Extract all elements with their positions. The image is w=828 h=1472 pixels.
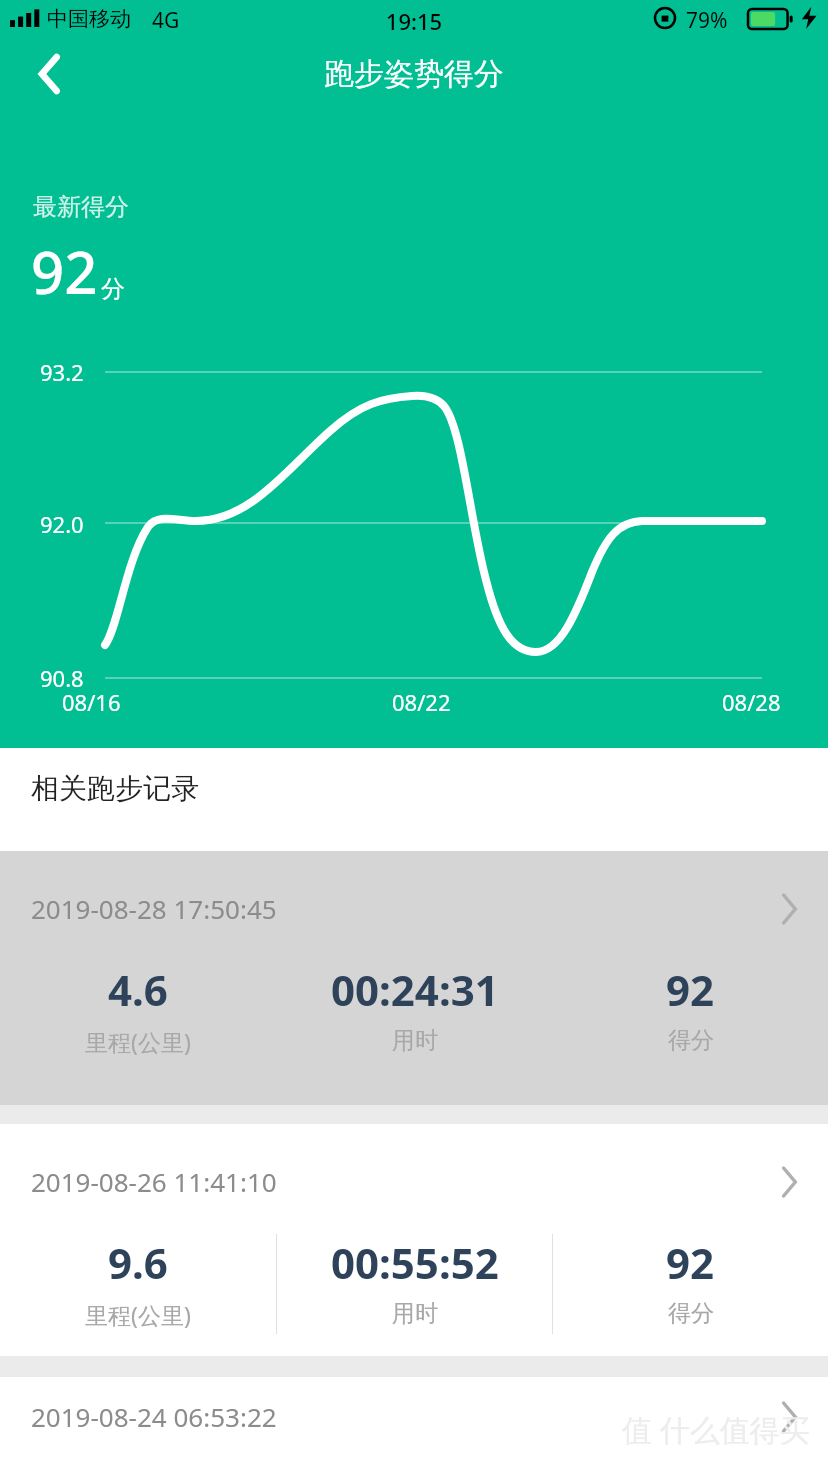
button[interactable]: 2019-08-28 17:50:45 bbox=[0, 851, 828, 1105]
staticText: 08/16 bbox=[62, 687, 121, 717]
staticText: 分 bbox=[101, 274, 125, 304]
button[interactable]: 2019-08-24 06:53:22 bbox=[0, 1377, 828, 1472]
staticText: 00:24:31 bbox=[331, 961, 499, 1018]
staticText: 2019-08-24 06:53:22 bbox=[31, 1399, 277, 1434]
button[interactable]: Back bbox=[14, 44, 86, 104]
staticText: 得分 bbox=[668, 1026, 714, 1055]
staticText: 9.6 bbox=[108, 1234, 168, 1291]
staticText: 92 bbox=[31, 232, 98, 311]
staticText: 中国移动 bbox=[47, 6, 131, 32]
staticText: 90.8 bbox=[40, 663, 84, 693]
staticText: 2019-08-26 11:41:10 bbox=[31, 1164, 277, 1199]
staticText: 用时 bbox=[392, 1299, 438, 1328]
staticText: 79% bbox=[686, 6, 728, 35]
staticText: 用时 bbox=[392, 1026, 438, 1055]
staticText: 4G bbox=[152, 6, 180, 35]
staticText: 92 bbox=[666, 961, 715, 1018]
staticText: 里程(公里) bbox=[85, 1299, 191, 1330]
button[interactable]: 2019-08-26 11:41:10 bbox=[0, 1124, 828, 1356]
staticText: 最新得分 bbox=[33, 192, 129, 222]
staticText: 00:55:52 bbox=[331, 1234, 499, 1291]
staticText: 值 什么值得买 bbox=[622, 1409, 810, 1450]
staticText: 得分 bbox=[668, 1299, 714, 1328]
staticText: 92 bbox=[666, 1234, 715, 1291]
staticText: 08/22 bbox=[392, 687, 451, 717]
staticText: 里程(公里) bbox=[85, 1026, 191, 1057]
staticText: 4.6 bbox=[108, 961, 168, 1018]
staticText: 92.0 bbox=[40, 509, 84, 539]
staticText: 跑步姿势得分 bbox=[0, 55, 828, 93]
staticText: 相关跑步记录 bbox=[31, 771, 199, 806]
staticText: 19:15 bbox=[0, 6, 828, 36]
staticText: 2019-08-28 17:50:45 bbox=[31, 891, 277, 926]
staticText: 93.2 bbox=[40, 357, 84, 387]
staticText: 08/28 bbox=[722, 687, 781, 717]
